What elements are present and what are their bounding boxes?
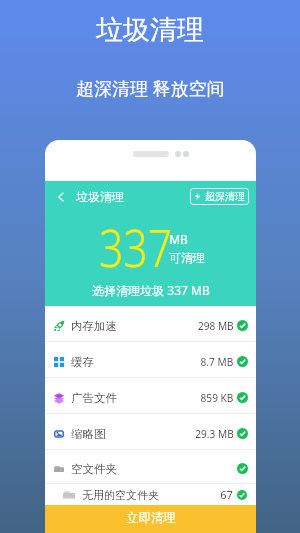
staticText: 超深清理: [205, 190, 245, 203]
staticText: 垃圾清理: [76, 189, 124, 204]
staticText: 空文件夹: [71, 462, 117, 476]
button[interactable]: 无用的空文件夹: [45, 484, 256, 505]
staticText: 8.7 MB: [201, 354, 234, 370]
button[interactable]: 超深清理: [190, 188, 249, 205]
staticText: 337: [99, 211, 173, 282]
staticText: 选择清理垃圾 337 MB: [92, 282, 210, 298]
staticText: 广告文件: [71, 391, 117, 405]
staticText: 859 KB: [201, 390, 234, 406]
staticText: 立即清理: [126, 510, 176, 526]
button[interactable]: 缓存: [45, 342, 256, 377]
button[interactable]: Back: [53, 189, 69, 205]
button[interactable]: 立即清理: [45, 505, 256, 533]
staticText: 内存加速: [71, 319, 117, 333]
staticText: 缩略图: [71, 427, 106, 441]
button[interactable]: 空文件夹: [45, 450, 256, 483]
staticText: 29.3 MB: [195, 426, 234, 442]
staticText: 可清理: [169, 250, 205, 265]
button[interactable]: 广告文件: [45, 378, 256, 413]
button[interactable]: 内存加速: [45, 306, 256, 341]
staticText: MB: [169, 231, 188, 247]
staticText: 缓存: [71, 355, 94, 369]
staticText: 无用的空文件夹: [82, 488, 159, 502]
staticText: 298 MB: [198, 318, 234, 334]
staticText: 超深清理 释放空间: [76, 76, 225, 101]
button[interactable]: 缩略图: [45, 414, 256, 449]
staticText: 67: [220, 487, 233, 502]
staticText: 垃圾清理: [96, 13, 204, 47]
